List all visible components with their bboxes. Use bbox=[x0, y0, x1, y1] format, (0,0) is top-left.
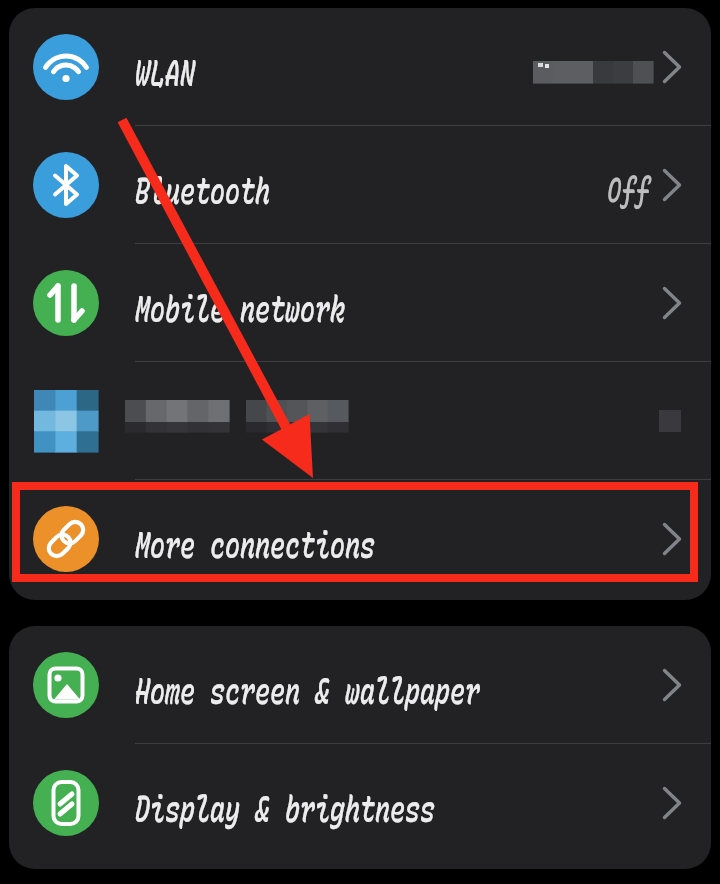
button[interactable]: Mobile network bbox=[9, 244, 711, 361]
staticText: More connections bbox=[135, 523, 376, 566]
other: Mobile network bbox=[33, 270, 99, 336]
other: WLAN bbox=[33, 34, 99, 100]
staticText: Bluetooth bbox=[135, 169, 271, 212]
other: Home screen and wallpaper bbox=[33, 652, 99, 718]
staticText: WLAN bbox=[135, 51, 196, 94]
other: More connections bbox=[33, 506, 99, 572]
staticText: Display & brightness bbox=[135, 787, 436, 830]
staticText: Off bbox=[607, 169, 651, 211]
button[interactable]: Display and brightness bbox=[9, 744, 711, 861]
other: Bluetooth bbox=[33, 152, 99, 218]
button[interactable]: WLAN bbox=[9, 8, 711, 125]
button[interactable]: Hidden setting bbox=[9, 362, 711, 479]
button[interactable]: Home screen and wallpaper bbox=[9, 626, 711, 743]
button[interactable]: Bluetooth bbox=[9, 126, 711, 243]
staticText: Home screen & wallpaper bbox=[135, 669, 481, 712]
staticText: Mobile network bbox=[135, 287, 346, 330]
button[interactable]: More connections bbox=[9, 480, 711, 597]
other: Display and brightness bbox=[33, 770, 99, 836]
